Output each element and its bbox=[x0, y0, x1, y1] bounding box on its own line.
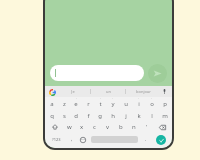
staticText: m bbox=[162, 112, 168, 120]
button[interactable]: , bbox=[66, 133, 77, 146]
staticText: k bbox=[137, 112, 141, 120]
button[interactable]: Enter bbox=[151, 133, 170, 146]
button[interactable]: h bbox=[106, 109, 119, 121]
button[interactable]: z bbox=[58, 97, 70, 109]
staticText: ' bbox=[146, 123, 148, 131]
button[interactable]: k bbox=[132, 109, 145, 121]
staticText: y bbox=[111, 100, 115, 108]
staticText: z bbox=[63, 100, 66, 108]
staticText: w bbox=[67, 123, 72, 131]
staticText: i bbox=[138, 100, 140, 108]
staticText: . bbox=[145, 136, 147, 143]
staticText: u bbox=[124, 100, 128, 108]
staticText: a bbox=[50, 100, 54, 108]
button[interactable]: ` bbox=[106, 97, 119, 109]
staticText: Je bbox=[71, 89, 75, 94]
button[interactable]: s bbox=[58, 109, 70, 121]
button[interactable]: n bbox=[127, 121, 140, 133]
button[interactable]: ` bbox=[70, 97, 82, 109]
staticText: p bbox=[163, 100, 167, 108]
button[interactable]: g bbox=[94, 109, 106, 121]
staticText: e bbox=[74, 100, 78, 108]
button[interactable] bbox=[50, 65, 144, 81]
button[interactable]: un bbox=[91, 86, 125, 97]
button[interactable]: m bbox=[158, 109, 171, 121]
staticText: c bbox=[93, 123, 96, 131]
staticText: ` bbox=[112, 98, 113, 102]
button[interactable]: . bbox=[140, 133, 151, 146]
staticText: , bbox=[71, 136, 73, 143]
button[interactable]: w bbox=[63, 121, 75, 133]
button[interactable]: Shift bbox=[46, 121, 63, 133]
button[interactable]: Voice input bbox=[160, 86, 169, 97]
staticText: l bbox=[151, 112, 153, 120]
button[interactable]: ' bbox=[140, 121, 153, 133]
button[interactable]: v bbox=[101, 121, 114, 133]
staticText: ` bbox=[76, 98, 77, 102]
staticText: un bbox=[106, 89, 111, 94]
button[interactable]: f bbox=[82, 109, 94, 121]
button[interactable]: u bbox=[119, 97, 132, 109]
staticText: v bbox=[106, 123, 110, 131]
button[interactable]: ` bbox=[145, 97, 158, 109]
button[interactable]: c bbox=[88, 121, 101, 133]
button[interactable]: l bbox=[145, 109, 158, 121]
staticText: ?123 bbox=[52, 137, 61, 142]
staticText: q bbox=[50, 112, 54, 120]
staticText: t bbox=[99, 100, 102, 108]
button[interactable]: d bbox=[70, 109, 82, 121]
button[interactable]: ` bbox=[132, 97, 145, 109]
staticText: h bbox=[111, 112, 115, 120]
staticText: r bbox=[87, 100, 90, 108]
button[interactable]: Send bbox=[148, 64, 167, 83]
button[interactable]: ` bbox=[94, 97, 106, 109]
button[interactable]: q bbox=[46, 109, 58, 121]
button[interactable]: Emoji bbox=[77, 133, 89, 146]
staticText: ` bbox=[151, 98, 152, 102]
button[interactable]: ?123 bbox=[47, 133, 66, 146]
staticText: d bbox=[74, 112, 78, 120]
staticText: ` bbox=[138, 98, 139, 102]
staticText: g bbox=[98, 112, 102, 120]
staticText: ` bbox=[100, 98, 101, 102]
button[interactable]: b bbox=[114, 121, 127, 133]
button[interactable]: a bbox=[46, 97, 58, 109]
staticText: bonjour bbox=[136, 89, 151, 94]
button[interactable]: Google bbox=[48, 88, 56, 96]
staticText: f bbox=[87, 112, 90, 120]
staticText: n bbox=[132, 123, 136, 131]
button[interactable]: r bbox=[82, 97, 94, 109]
staticText: o bbox=[150, 100, 154, 108]
button[interactable]: Backspace bbox=[153, 121, 171, 133]
button[interactable]: j bbox=[119, 109, 132, 121]
button[interactable]: bonjour bbox=[126, 86, 160, 97]
staticText: b bbox=[119, 123, 123, 131]
staticText: x bbox=[80, 123, 84, 131]
staticText: j bbox=[125, 112, 127, 120]
button[interactable]: p bbox=[158, 97, 171, 109]
button[interactable]: Je bbox=[56, 86, 90, 97]
staticText: s bbox=[63, 112, 66, 120]
button[interactable]: x bbox=[75, 121, 88, 133]
